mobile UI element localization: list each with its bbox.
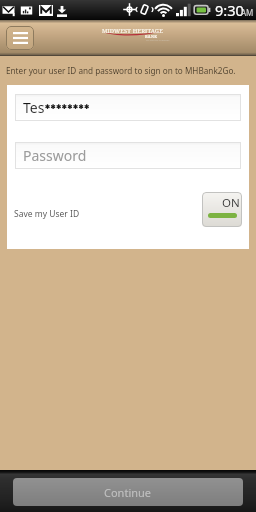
staticText: Save my User ID — [14, 208, 80, 220]
button[interactable]: Password — [15, 142, 241, 169]
staticText: AM — [241, 7, 254, 18]
staticText: It's Not the Company — [146, 38, 170, 41]
staticText: Enter your user ID and password to sign … — [6, 65, 236, 76]
staticText: Tes — [23, 98, 45, 117]
button[interactable]: Open navigation menu — [6, 26, 34, 50]
staticText: Password — [23, 146, 87, 165]
staticText: 9:30 — [215, 0, 244, 20]
button[interactable]: Tes — [15, 94, 241, 121]
staticText: MIDWEST HERITAGE — [102, 27, 163, 35]
button[interactable]: Save my User ID toggle, on — [202, 192, 242, 227]
button[interactable]: Continue — [13, 478, 243, 506]
staticText: ON — [222, 195, 240, 211]
staticText: Continue — [104, 485, 152, 500]
staticText: BANK — [145, 34, 158, 39]
